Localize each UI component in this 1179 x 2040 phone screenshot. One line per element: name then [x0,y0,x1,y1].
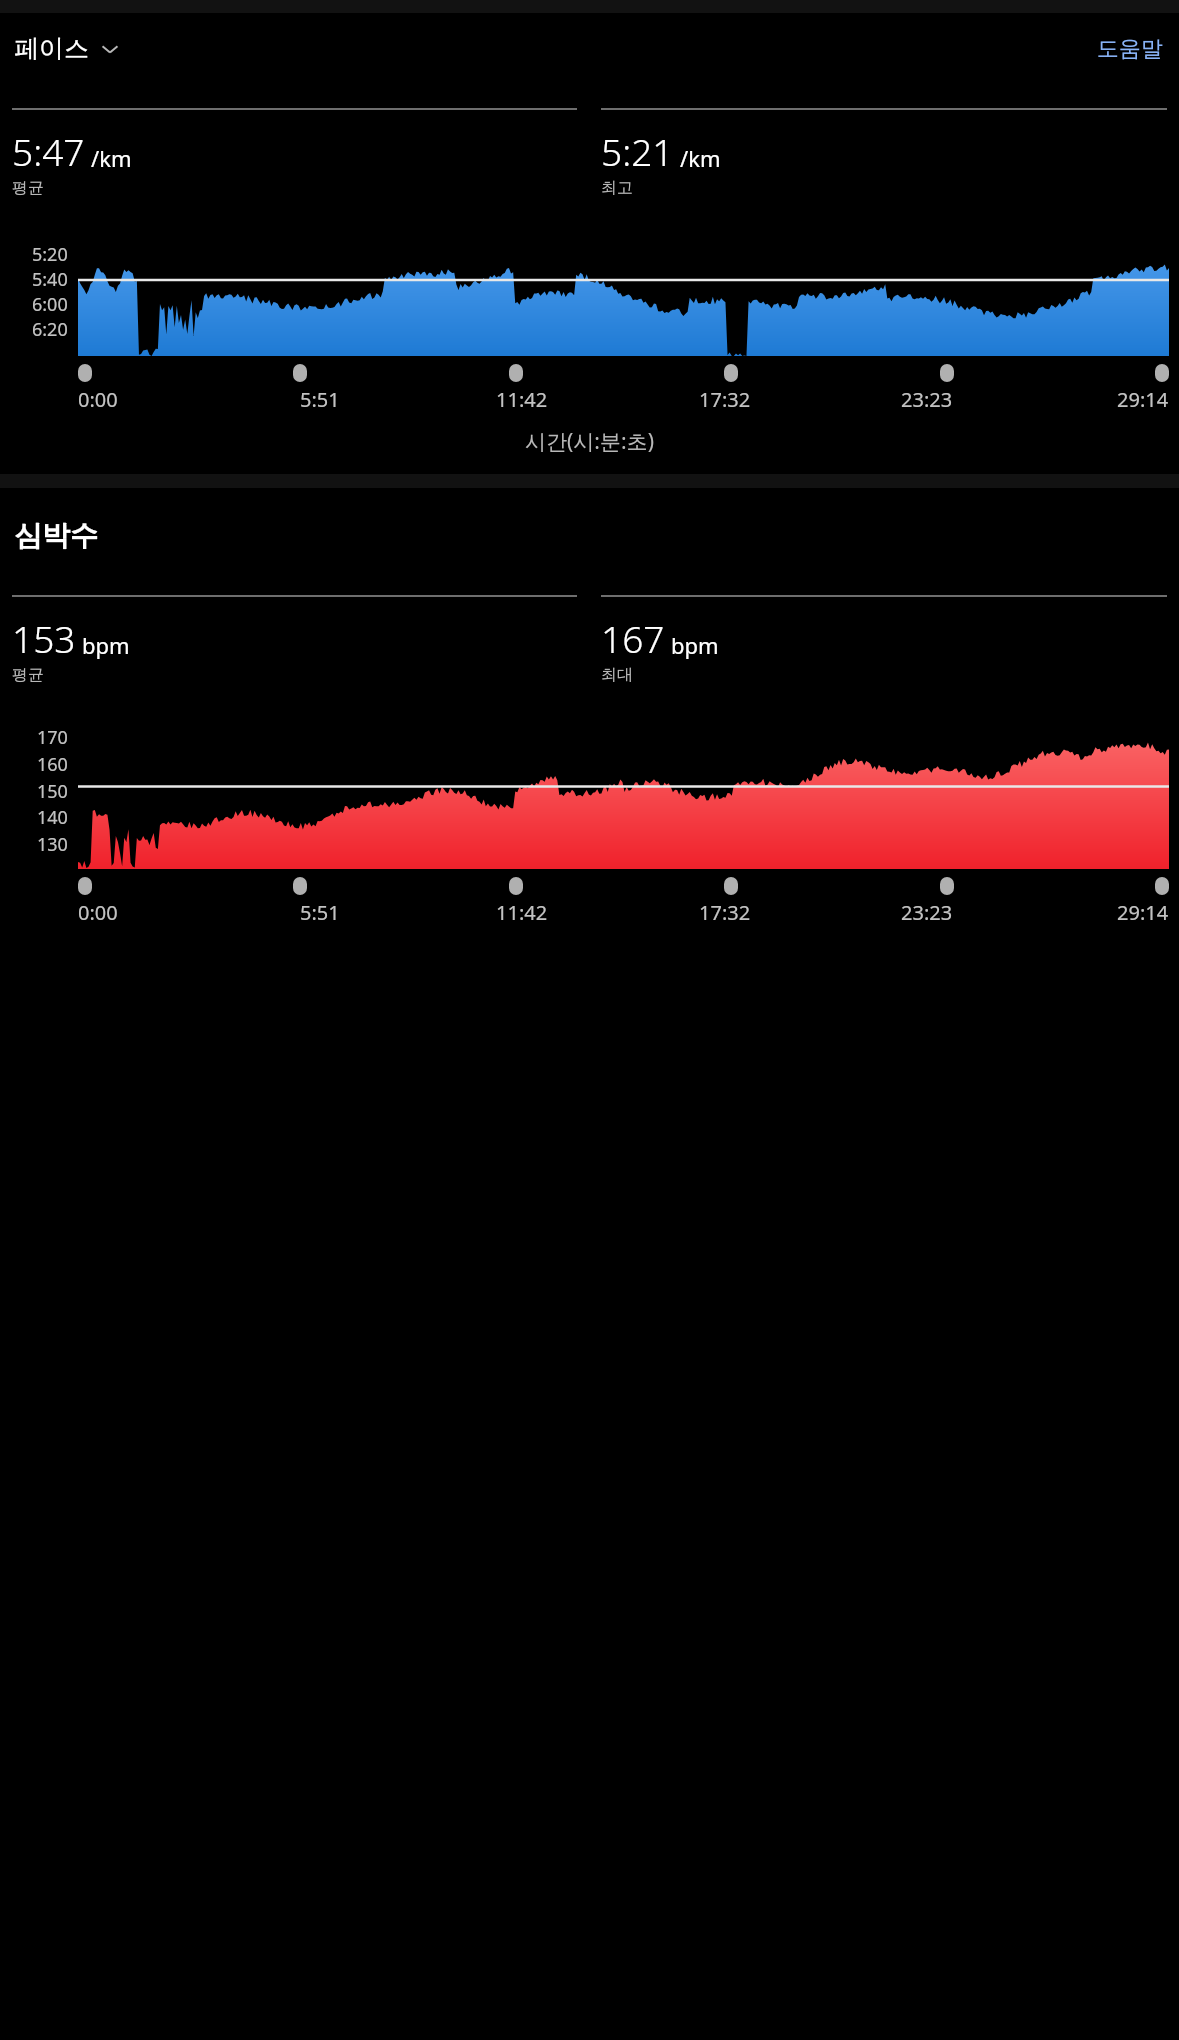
staticText: 최대 [601,665,633,685]
staticText: bpm [671,630,719,660]
staticText: 6:00 [32,292,68,317]
staticText: 29:14 [1117,386,1169,413]
staticText: 6:20 [32,317,68,342]
staticText: 평균 [12,178,44,198]
staticText: 페이스 [14,33,89,64]
staticText: 11:42 [496,386,548,413]
other: Change metric [99,38,121,60]
staticText: 167 [601,613,665,663]
staticText: bpm [82,630,130,660]
staticText: 5:47 [12,126,85,176]
staticText: 시간(시:분:초) [525,427,654,456]
staticText: 23:23 [901,386,953,413]
staticText: 최고 [601,178,633,198]
staticText: 140 [37,805,68,830]
staticText: 170 [37,725,68,750]
staticText: 11:42 [496,899,548,926]
staticText: 5:51 [300,386,340,413]
staticText: /km [91,143,132,173]
button[interactable]: 도움말 [1093,29,1167,69]
staticText: 도움말 [1097,35,1163,63]
staticText: 5:40 [32,267,68,292]
staticText: 23:23 [901,899,953,926]
staticText: 0:00 [78,386,118,413]
staticText: 29:14 [1117,899,1169,926]
button[interactable]: 페이스 [12,27,123,70]
staticText: 심박수 [14,518,98,553]
staticText: 17:32 [699,386,751,413]
staticText: 5:20 [32,242,68,267]
staticText: 5:51 [300,899,340,926]
staticText: /km [680,143,721,173]
staticText: 0:00 [78,899,118,926]
staticText: 153 [12,613,76,663]
staticText: 130 [37,832,68,857]
staticText: 5:21 [601,126,674,176]
staticText: 160 [37,752,68,777]
staticText: 평균 [12,665,44,685]
staticText: 150 [37,779,68,804]
staticText: 17:32 [699,899,751,926]
